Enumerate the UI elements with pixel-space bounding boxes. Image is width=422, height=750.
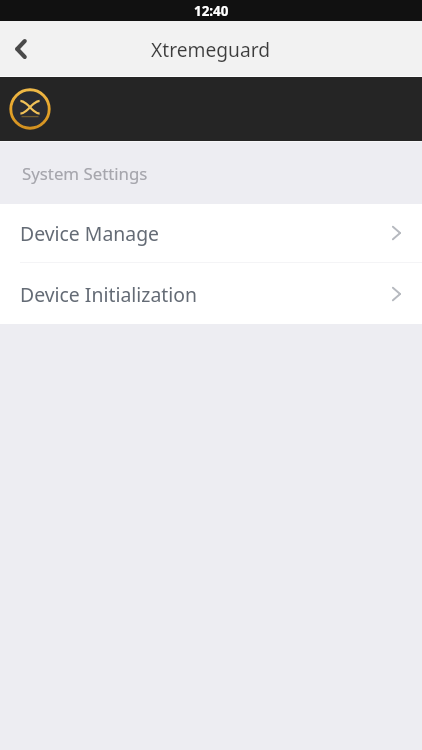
button[interactable]: Xtremeguard logo <box>9 88 51 130</box>
button[interactable]: Device Initialization <box>0 263 422 324</box>
staticText: 12:40 <box>194 2 229 20</box>
staticText: Device Initialization <box>20 281 197 307</box>
button[interactable]: Back <box>0 21 42 77</box>
staticText: Xtremeguard <box>151 36 271 62</box>
staticText: Device Manage <box>20 220 160 246</box>
button[interactable]: Device Manage <box>0 204 422 262</box>
staticText: System Settings <box>22 162 148 185</box>
